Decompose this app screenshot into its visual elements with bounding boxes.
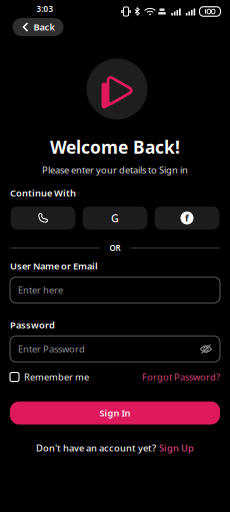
staticText: Sign In xyxy=(99,407,130,419)
staticText: Remember me xyxy=(24,371,89,383)
staticText: OR xyxy=(109,243,120,253)
button[interactable]: Sign Up xyxy=(36,442,194,454)
staticText: f xyxy=(185,212,189,224)
staticText: Password xyxy=(10,319,55,331)
button[interactable]: Forgot Password? xyxy=(142,371,220,383)
button[interactable]: Continue with Phone xyxy=(10,206,75,229)
button[interactable]: Remember me xyxy=(10,371,89,383)
staticText: Back xyxy=(33,21,54,33)
button[interactable]: Back xyxy=(12,18,63,36)
staticText: Welcome Back! xyxy=(50,135,180,158)
staticText: Don't have an account yet? xyxy=(36,442,156,454)
staticText: Enter Password xyxy=(18,343,85,355)
staticText: Forgot Password? xyxy=(142,371,220,383)
staticText: Enter here xyxy=(18,284,63,296)
staticText: Continue With xyxy=(10,187,76,199)
staticText: 3:03 xyxy=(36,4,53,14)
button[interactable]: Continue with Google xyxy=(82,206,147,229)
button[interactable]: Continue with Facebook xyxy=(154,206,219,229)
staticText: Please enter your details to Sign in xyxy=(42,164,188,176)
button[interactable]: Show password xyxy=(200,344,212,354)
staticText: Sign Up xyxy=(159,442,194,454)
staticText: User Name or Email xyxy=(10,260,98,272)
button[interactable]: Sign In xyxy=(10,401,220,424)
staticText: G xyxy=(111,211,119,225)
